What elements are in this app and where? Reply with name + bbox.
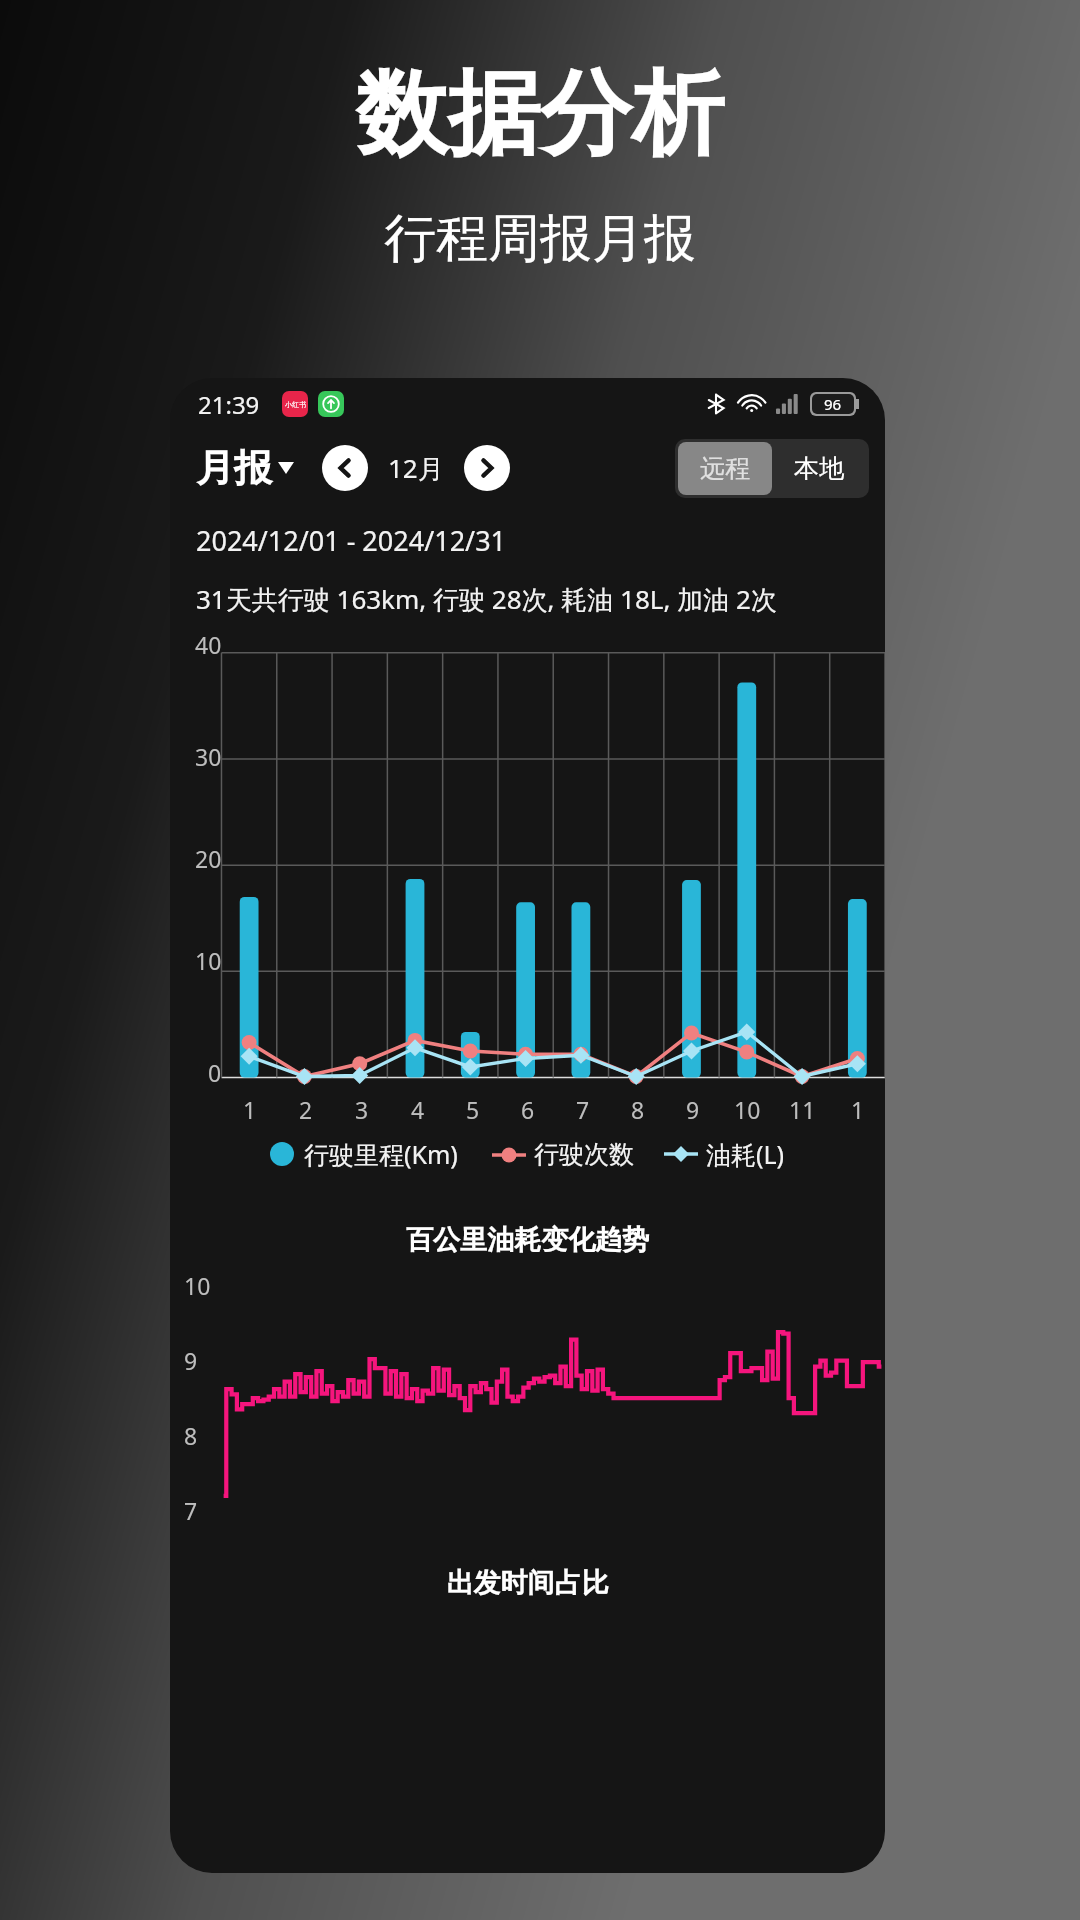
staticText: 数据分析	[356, 56, 724, 172]
staticText: 行驶次数	[534, 1139, 634, 1170]
button[interactable]: Previous month	[322, 445, 368, 491]
staticText: 3	[355, 1094, 369, 1125]
staticText: 31天共行驶 163km, 行驶 28次, 耗油 18L, 加油 2次	[196, 581, 777, 617]
staticText: 7	[576, 1094, 590, 1125]
button[interactable]: Next month	[464, 445, 510, 491]
staticText: 9	[686, 1094, 700, 1125]
staticText: 远程	[700, 453, 750, 484]
staticText: 油耗(L)	[706, 1137, 785, 1171]
button[interactable]: 远程	[678, 442, 772, 495]
button[interactable]: 本地	[772, 442, 866, 495]
staticText: 本地	[794, 453, 844, 484]
staticText: 4	[411, 1094, 425, 1125]
staticText: 1	[851, 1094, 865, 1125]
button[interactable]: 行驶次数	[492, 1139, 634, 1170]
staticText: 12月	[388, 450, 444, 486]
staticText: 百公里油耗变化趋势	[170, 1223, 885, 1257]
staticText: 8	[184, 1420, 198, 1451]
staticText: 2	[299, 1094, 313, 1125]
button[interactable]: 油耗(L)	[664, 1137, 785, 1171]
staticText: 0	[208, 1057, 222, 1088]
staticText: 小红书	[285, 400, 306, 409]
button[interactable]: 月报	[196, 438, 294, 498]
staticText: 出发时间占比	[170, 1566, 885, 1600]
button[interactable]: 行驶里程(Km)	[270, 1137, 458, 1171]
staticText: 10	[195, 945, 222, 976]
staticText: 月报	[196, 444, 272, 492]
staticText: 96	[824, 394, 842, 414]
staticText: 10	[184, 1270, 211, 1301]
staticText: 1	[243, 1094, 257, 1125]
staticText: 30	[195, 741, 222, 772]
staticText: 5	[466, 1094, 480, 1125]
staticText: 7	[184, 1495, 198, 1526]
staticText: 行程周报月报	[384, 206, 696, 272]
staticText: 40	[195, 629, 222, 660]
staticText: 8	[631, 1094, 645, 1125]
staticText: 行驶里程(Km)	[304, 1137, 458, 1171]
staticText: 9	[184, 1345, 198, 1376]
staticText: 6	[521, 1094, 535, 1125]
staticText: 2024/12/01 - 2024/12/31	[196, 522, 507, 559]
staticText: 10	[734, 1094, 761, 1125]
staticText: 21:39	[198, 388, 260, 421]
staticText: 11	[789, 1094, 816, 1125]
staticText: 20	[195, 843, 222, 874]
